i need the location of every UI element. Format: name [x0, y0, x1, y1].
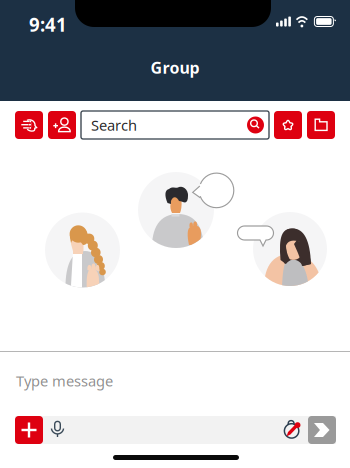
- button[interactable]: Draw: [278, 416, 308, 444]
- button[interactable]: Speech: [15, 111, 43, 139]
- button[interactable]: Folders: [307, 111, 335, 139]
- button[interactable]: Add person: [48, 111, 76, 139]
- button[interactable]: Send: [308, 416, 336, 444]
- staticText: Type message: [16, 371, 113, 390]
- button[interactable]: Favorites: [274, 111, 302, 139]
- button[interactable]: Search: [81, 111, 269, 139]
- staticText: 9:41: [29, 12, 67, 37]
- staticText: Group: [150, 57, 199, 78]
- staticText: Search: [91, 115, 137, 135]
- button[interactable]: Add attachment: [15, 416, 43, 444]
- button[interactable]: Record voice: [43, 416, 73, 444]
